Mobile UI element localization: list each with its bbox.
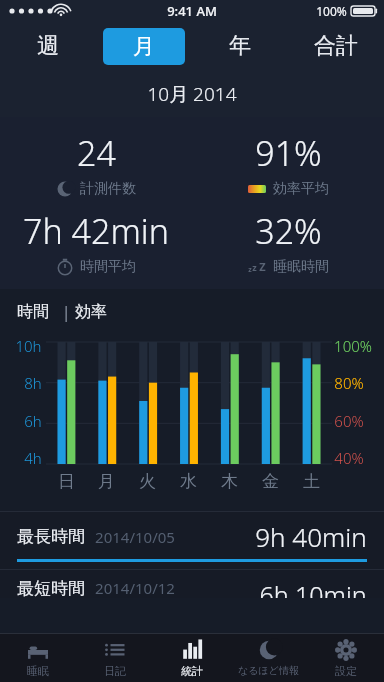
staticText: 9h 40min: [255, 519, 367, 554]
button[interactable]: 91%: [192, 125, 384, 203]
staticText: 計測件数: [80, 180, 136, 198]
staticText: z: [252, 261, 257, 273]
button[interactable]: 睡眠: [0, 634, 76, 682]
staticText: 10月 2014: [147, 81, 237, 107]
staticText: 時間平均: [80, 258, 136, 276]
staticText: 設定: [335, 664, 357, 678]
button[interactable]: 24: [0, 125, 192, 203]
staticText: 最長時間: [17, 526, 85, 547]
button[interactable]: なるほど情報: [230, 634, 307, 682]
staticText: 60%: [334, 411, 364, 427]
staticText: 80%: [334, 373, 364, 389]
staticText: 合計: [314, 32, 358, 60]
staticText: 木: [221, 471, 238, 492]
staticText: 9:41 AM: [167, 2, 217, 20]
staticText: 6h 10min: [259, 578, 367, 598]
staticText: 効率: [75, 302, 107, 322]
staticText: 統計: [181, 664, 203, 678]
staticText: Z: [259, 259, 266, 274]
staticText: 32%: [255, 208, 322, 254]
button[interactable]: 設定: [307, 634, 384, 682]
button[interactable]: 最長時間: [0, 512, 384, 569]
staticText: 睡眠: [27, 664, 49, 678]
staticText: 8h: [24, 373, 42, 389]
staticText: 最短時間: [17, 578, 85, 598]
staticText: 日記: [104, 664, 126, 678]
staticText: z: [248, 265, 252, 275]
button[interactable]: 月: [96, 22, 192, 70]
button[interactable]: 統計: [153, 634, 230, 682]
button[interactable]: 日記: [76, 634, 153, 682]
staticText: 年: [229, 32, 251, 60]
staticText: 週: [37, 32, 59, 60]
staticText: 10h: [15, 336, 42, 352]
staticText: 2014/10/05: [95, 527, 175, 547]
staticText: 火: [139, 471, 156, 492]
staticText: 24: [77, 130, 116, 176]
staticText: 月: [133, 33, 155, 61]
staticText: なるほど情報: [238, 664, 299, 677]
button[interactable]: 合計: [288, 22, 384, 70]
staticText: 4h: [24, 448, 42, 464]
staticText: |: [49, 301, 75, 323]
staticText: 水: [180, 471, 197, 492]
staticText: 日: [58, 471, 75, 492]
staticText: 睡眠時間: [273, 258, 329, 276]
staticText: 2014/10/12: [95, 578, 175, 598]
staticText: 40%: [334, 448, 364, 464]
staticText: 91%: [255, 130, 322, 176]
staticText: 100%: [334, 336, 372, 352]
staticText: 時間: [17, 302, 49, 322]
button[interactable]: 32%: [192, 203, 384, 281]
staticText: 6h: [24, 411, 42, 427]
staticText: 土: [303, 471, 320, 492]
staticText: 100%: [316, 3, 347, 19]
staticText: 7h 42min: [23, 208, 169, 254]
staticText: 金: [262, 471, 279, 492]
staticText: 月: [98, 471, 115, 492]
button[interactable]: 7h 42min: [0, 203, 192, 281]
staticText: 効率平均: [273, 180, 329, 198]
button[interactable]: 最短時間: [0, 570, 384, 598]
button[interactable]: 週: [0, 22, 96, 70]
button[interactable]: 年: [192, 22, 288, 70]
